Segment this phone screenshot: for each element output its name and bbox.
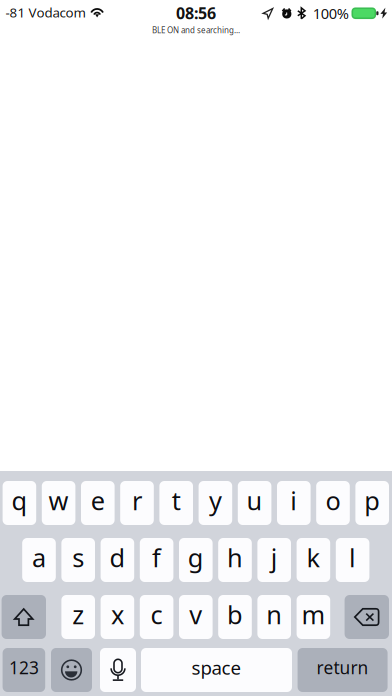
staticText: x [111, 598, 124, 631]
button[interactable]: v [179, 595, 213, 639]
button[interactable]: d [101, 538, 134, 582]
button[interactable]: g [179, 538, 213, 582]
button[interactable]: u [238, 481, 271, 525]
button[interactable]: x [101, 595, 134, 639]
staticText: 100% [313, 3, 349, 23]
staticText: s [72, 541, 84, 574]
button[interactable]: return [298, 648, 388, 692]
button[interactable]: Delete [345, 595, 389, 639]
staticText: 123 [9, 656, 39, 679]
staticText: p [364, 484, 380, 517]
button[interactable]: a [22, 538, 56, 582]
button[interactable]: b [218, 595, 252, 639]
staticText: h [227, 541, 243, 574]
staticText: BLE ON and searching... [152, 25, 240, 35]
staticText: v [189, 598, 202, 631]
staticText: u [247, 484, 263, 517]
button[interactable]: o [316, 481, 350, 525]
button[interactable]: z [61, 595, 95, 639]
button[interactable]: e [81, 481, 115, 525]
staticText: i [290, 484, 297, 517]
staticText: l [349, 541, 356, 574]
staticText: -81 Vodacom [5, 3, 85, 21]
staticText: g [188, 541, 204, 574]
button[interactable]: j [257, 538, 291, 582]
button[interactable]: r [120, 481, 154, 525]
staticText: m [301, 598, 325, 631]
button[interactable]: s [61, 538, 95, 582]
staticText: b [227, 598, 243, 631]
staticText: o [325, 484, 340, 517]
button[interactable]: Emoji [51, 648, 92, 692]
staticText: d [109, 541, 125, 574]
button[interactable]: k [297, 538, 330, 582]
staticText: space [191, 655, 241, 680]
staticText: return [317, 656, 369, 679]
staticText: n [266, 598, 282, 631]
button[interactable]: Shift [2, 595, 46, 639]
button[interactable]: space [141, 648, 292, 692]
staticText: f [152, 541, 161, 574]
staticText: a [32, 541, 46, 574]
staticText: 08:56 [176, 2, 216, 24]
button[interactable]: t [159, 481, 193, 525]
button[interactable]: p [355, 481, 389, 525]
button[interactable]: f [140, 538, 173, 582]
staticText: z [72, 598, 84, 631]
button[interactable]: l [336, 538, 369, 582]
staticText: y [209, 484, 222, 517]
button[interactable]: h [218, 538, 252, 582]
staticText: k [306, 541, 320, 574]
button[interactable]: n [257, 595, 291, 639]
staticText: q [11, 484, 27, 517]
button[interactable]: m [297, 595, 330, 639]
staticText: r [132, 484, 142, 517]
staticText: w [49, 484, 69, 517]
button[interactable]: Numbers [3, 648, 45, 692]
staticText: c [151, 598, 163, 631]
button[interactable]: w [42, 481, 75, 525]
staticText: t [172, 484, 181, 517]
staticText: e [91, 484, 105, 517]
button[interactable]: i [277, 481, 311, 525]
button[interactable]: c [140, 595, 173, 639]
staticText: j [271, 541, 278, 574]
button[interactable]: Dictation [100, 648, 136, 692]
button[interactable]: y [199, 481, 232, 525]
button[interactable]: q [3, 481, 36, 525]
